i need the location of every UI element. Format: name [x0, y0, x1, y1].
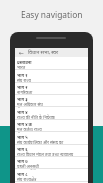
staticText: भाग ८ [17, 172, 28, 178]
button[interactable]: भाग ५ [15, 133, 88, 145]
button[interactable]: Back [15, 48, 28, 57]
button[interactable]: भाग १ [15, 71, 88, 83]
staticText: संघ राज्य [17, 78, 32, 84]
staticText: राज्य विधान मंडल तथा उच्च न्यायालय [17, 152, 74, 158]
button[interactable]: प्रस्तावना [15, 58, 88, 70]
staticText: प्रस्तावना [17, 60, 32, 66]
button[interactable]: भाग ७ [15, 157, 88, 169]
staticText: भाग १ [17, 73, 28, 79]
staticText: भाग २ [17, 85, 28, 91]
staticText: मूल अधिकार संघ [17, 102, 43, 108]
button[interactable]: भाग ४ क [15, 120, 88, 132]
button[interactable]: भाग २ [15, 83, 88, 95]
staticText: संघ राज्यक्षेत्र [17, 177, 37, 183]
staticText: भाग ४ क [17, 122, 33, 128]
staticText: राज्य की नीति के निदेशक [17, 115, 56, 121]
button[interactable]: भाग ४ [15, 108, 88, 120]
staticText: नागरिकता [17, 90, 33, 96]
staticText: ← [19, 49, 25, 56]
staticText: भाग ६ [17, 147, 28, 153]
staticText: भाग ५ [17, 135, 28, 141]
staticText: Easy navigation [21, 9, 83, 20]
staticText: संघ कार्यपालिका और संसद का [17, 140, 64, 146]
staticText: भाग ३ [17, 97, 28, 103]
button[interactable]: भाग ६ [15, 145, 88, 157]
button[interactable]: भाग ३ [15, 95, 88, 107]
button[interactable]: Back [15, 48, 88, 57]
staticText: मूल कर्तव्य राज्य [17, 127, 42, 133]
staticText: भाग ४ [17, 110, 28, 116]
staticText: भाग ७ [17, 159, 28, 165]
button[interactable]: भाग ८ [15, 170, 88, 182]
staticText: पहली अनुसूची [17, 164, 39, 170]
staticText: भारत [17, 65, 26, 71]
staticText: विधान सभा, स्वर [28, 49, 59, 56]
